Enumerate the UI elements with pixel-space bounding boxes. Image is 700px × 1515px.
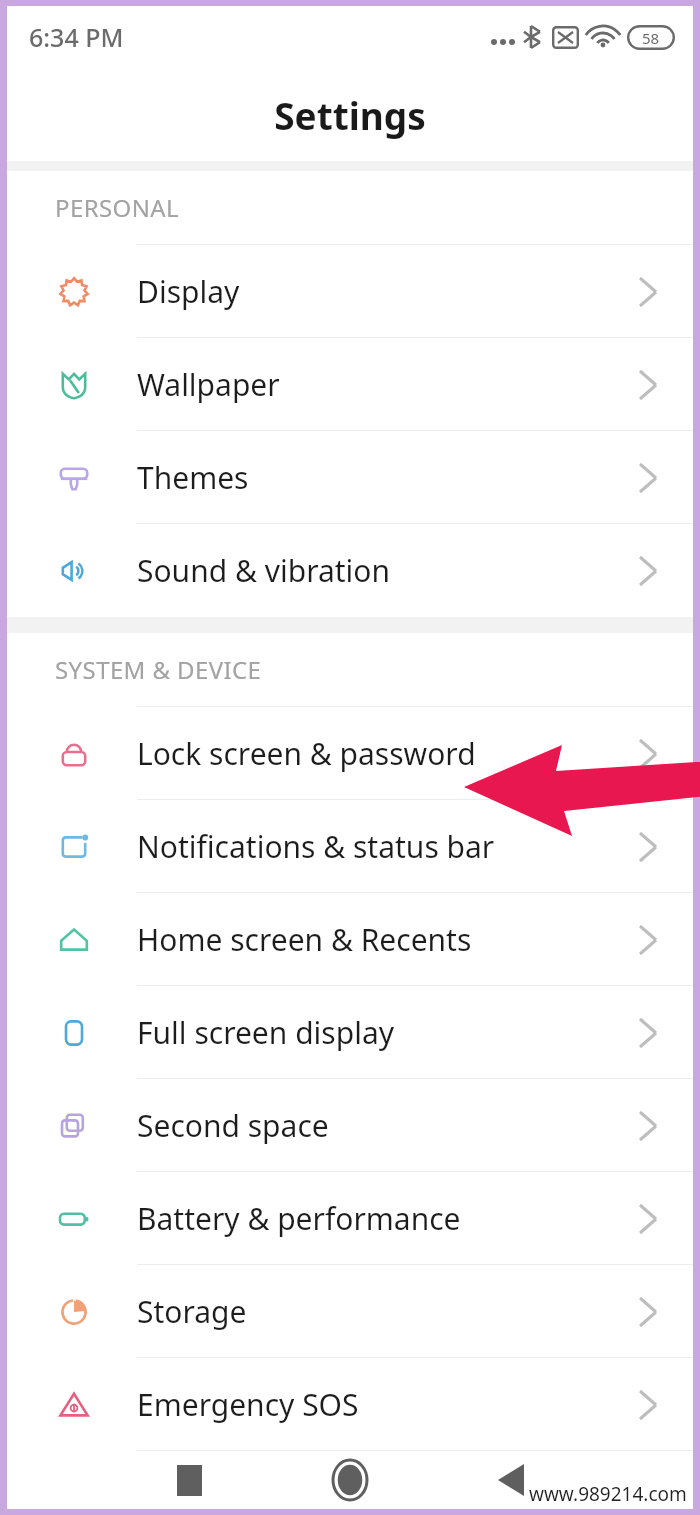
staticText: Emergency SOS xyxy=(137,1384,359,1425)
button[interactable]: Home xyxy=(318,1451,382,1509)
staticText: Battery & performance xyxy=(137,1198,461,1239)
staticText: SYSTEM & DEVICE xyxy=(55,653,262,686)
button[interactable]: Sound & vibration xyxy=(7,524,693,617)
button[interactable]: Second space xyxy=(7,1079,693,1172)
button[interactable]: Full screen display xyxy=(7,986,693,1079)
button[interactable]: Lock screen & password xyxy=(7,707,693,800)
staticText: Lock screen & password xyxy=(137,733,476,774)
button[interactable]: Home screen & Recents xyxy=(7,893,693,986)
button[interactable]: Storage xyxy=(7,1265,693,1358)
staticText: www.989214.com xyxy=(529,1481,687,1507)
button[interactable]: Themes xyxy=(7,431,693,524)
staticText: Notifications & status bar xyxy=(137,826,495,867)
staticText: Full screen display xyxy=(137,1012,395,1053)
button[interactable]: Wallpaper xyxy=(7,338,693,431)
staticText: PERSONAL xyxy=(55,191,180,224)
button[interactable]: Battery & performance xyxy=(7,1172,693,1265)
staticText: Second space xyxy=(137,1105,329,1146)
button[interactable]: Notifications & status bar xyxy=(7,800,693,893)
staticText: 58 xyxy=(642,28,660,48)
staticText: 6:34 PM xyxy=(29,20,124,54)
staticText: Themes xyxy=(137,457,249,498)
button[interactable]: Recents xyxy=(157,1451,221,1509)
staticText: Wallpaper xyxy=(137,364,280,405)
button[interactable]: Back xyxy=(479,1451,543,1509)
staticText: Home screen & Recents xyxy=(137,919,472,960)
staticText: Storage xyxy=(137,1291,247,1332)
staticText: Display xyxy=(137,271,240,312)
button[interactable]: Display xyxy=(7,245,693,338)
staticText: Sound & vibration xyxy=(137,550,391,591)
staticText: Settings xyxy=(274,90,426,140)
button[interactable]: Emergency SOS xyxy=(7,1358,693,1451)
